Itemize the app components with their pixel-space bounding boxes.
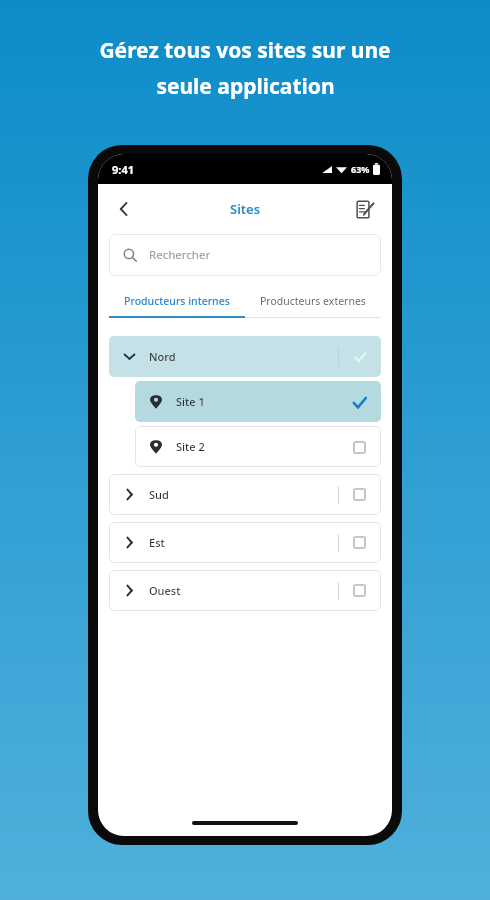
button[interactable]: Nord bbox=[109, 336, 381, 377]
button[interactable]: Edit bbox=[346, 190, 384, 228]
staticText: Est bbox=[149, 535, 165, 550]
staticText: 9:41 bbox=[112, 162, 134, 177]
button[interactable]: Producteurs internes bbox=[109, 286, 245, 316]
staticText: Producteurs internes bbox=[124, 294, 230, 308]
staticText: Producteurs externes bbox=[260, 294, 366, 308]
button[interactable]: Back bbox=[104, 189, 144, 229]
staticText: Gérez tous vos sites sur une bbox=[99, 36, 391, 65]
button[interactable]: Producteurs externes bbox=[245, 286, 381, 316]
button[interactable]: Rechercher bbox=[109, 234, 381, 276]
button[interactable]: Est bbox=[109, 522, 381, 563]
staticText: Nord bbox=[149, 349, 176, 364]
button[interactable]: Sud bbox=[109, 474, 381, 515]
staticText: 63% bbox=[351, 163, 370, 175]
button[interactable]: Site 2 bbox=[135, 426, 381, 467]
staticText: Site 1 bbox=[176, 394, 205, 409]
staticText: seule application bbox=[156, 72, 335, 101]
staticText: Ouest bbox=[149, 583, 181, 598]
button[interactable]: Ouest bbox=[109, 570, 381, 611]
staticText: Sud bbox=[149, 487, 169, 502]
staticText: Site 2 bbox=[176, 439, 205, 454]
button[interactable]: Site 1 bbox=[135, 381, 381, 422]
staticText: Rechercher bbox=[149, 247, 211, 263]
staticText: Sites bbox=[230, 200, 261, 218]
